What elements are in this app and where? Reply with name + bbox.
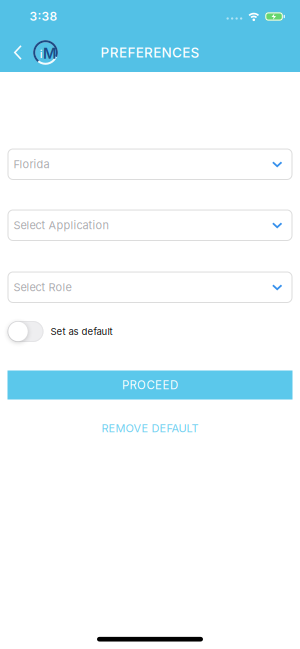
staticText: Set as default — [50, 326, 112, 337]
button[interactable]: PROCEED — [7, 370, 292, 399]
button[interactable]: Select Application — [7, 209, 292, 241]
staticText: i — [40, 47, 43, 61]
staticText: PREFERENCES — [100, 44, 199, 61]
staticText: Select Role — [13, 281, 71, 294]
staticText: REMOVE DEFAULT — [101, 421, 198, 435]
button[interactable]: Set as default — [7, 321, 43, 342]
staticText: 3:38 — [29, 9, 57, 24]
staticText: PROCEED — [122, 378, 178, 392]
button[interactable]: Back — [0, 45, 22, 60]
button[interactable]: Florida — [7, 148, 292, 180]
staticText: Florida — [13, 158, 49, 171]
button[interactable]: Select Role — [7, 271, 292, 303]
button[interactable]: REMOVE DEFAULT — [101, 421, 198, 435]
staticText: Select Application — [13, 219, 108, 232]
staticText: M — [43, 45, 56, 62]
